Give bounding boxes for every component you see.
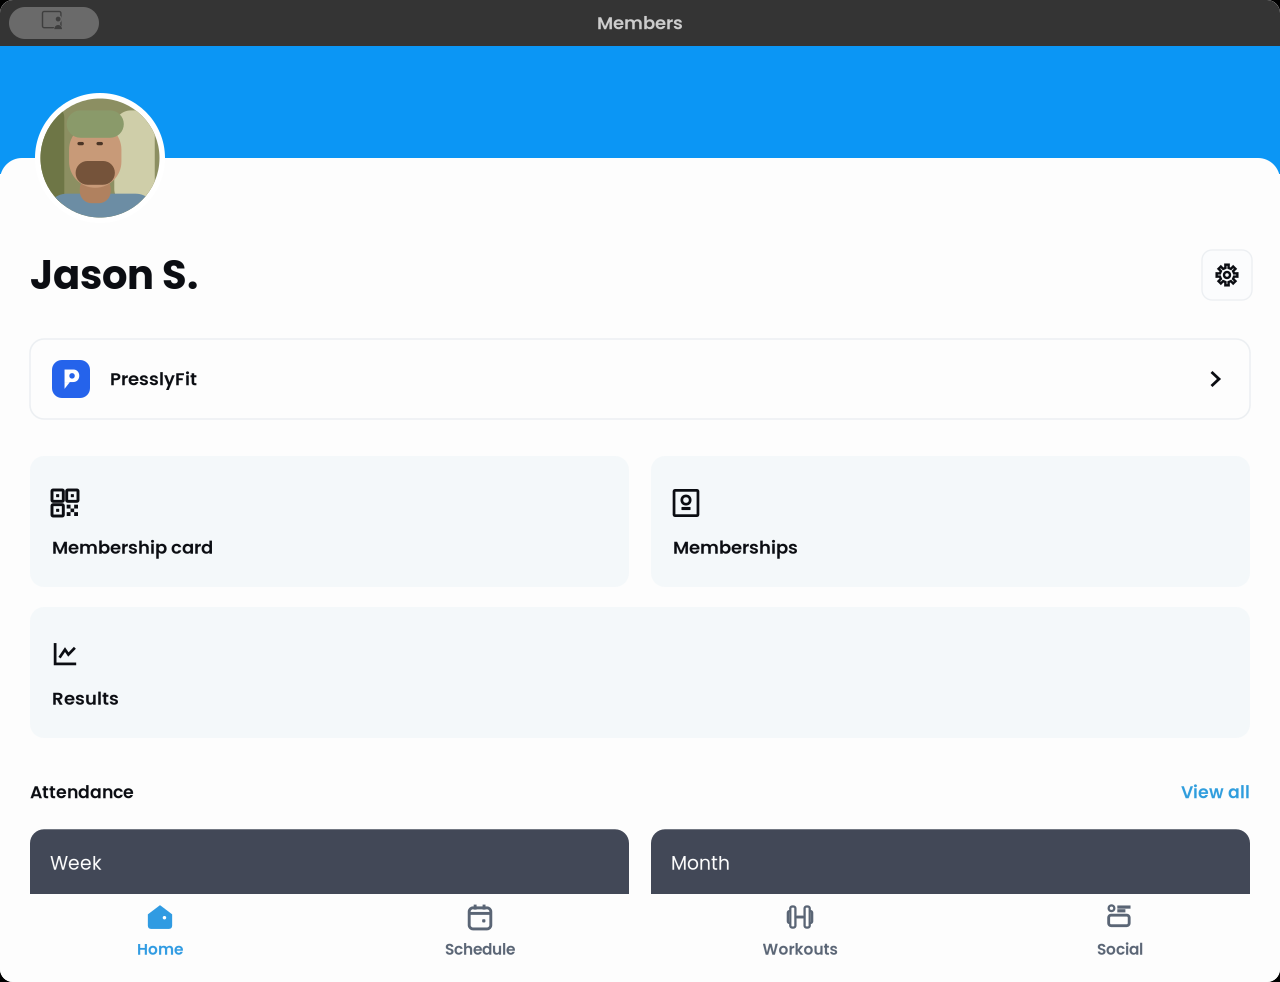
- staticText: Members: [597, 10, 683, 36]
- button[interactable]: Results: [30, 607, 1250, 738]
- staticText: Memberships: [673, 535, 798, 560]
- button[interactable]: Schedule: [320, 894, 640, 982]
- staticText: Week: [50, 850, 102, 876]
- button[interactable]: Social: [960, 894, 1280, 982]
- staticText: Membership card: [52, 535, 213, 560]
- staticText: Home: [137, 938, 183, 960]
- button[interactable]: Workouts: [640, 894, 960, 982]
- button[interactable]: Home: [0, 894, 320, 982]
- button[interactable]: View all: [1181, 780, 1250, 804]
- button[interactable]: Memberships: [651, 456, 1250, 587]
- button[interactable]: Week: [30, 829, 629, 949]
- staticText: PresslyFit: [110, 366, 197, 392]
- button[interactable]: Month: [651, 829, 1250, 949]
- staticText: Results: [52, 686, 119, 711]
- staticText: Schedule: [445, 938, 515, 960]
- button[interactable]: Membership card: [30, 456, 629, 587]
- button[interactable]: Settings: [1202, 250, 1252, 300]
- staticText: Attendance: [30, 780, 134, 804]
- staticText: View all: [1181, 780, 1250, 804]
- staticText: Jason S.: [30, 247, 198, 303]
- staticText: Workouts: [762, 938, 837, 960]
- button[interactable]: Screen mirroring: [9, 7, 99, 39]
- staticText: Month: [671, 850, 730, 876]
- button[interactable]: PresslyFit: [30, 339, 1250, 419]
- staticText: Social: [1097, 938, 1143, 960]
